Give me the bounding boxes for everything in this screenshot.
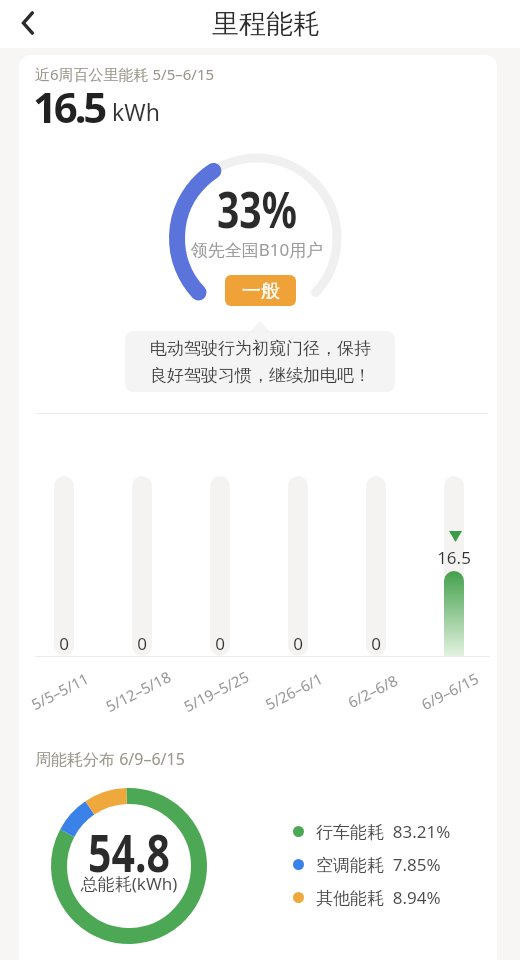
staticText: kWh — [112, 96, 160, 127]
staticText: 近6周百公里能耗 5/5–6/15 — [35, 64, 215, 84]
button[interactable]: 空调能耗 7.85% — [293, 853, 441, 876]
staticText: 5/5–5/11 — [28, 668, 92, 714]
staticText: 0 — [44, 632, 84, 655]
staticText: 其他能耗 8.94% — [316, 886, 441, 909]
staticText: 0 — [122, 632, 162, 655]
staticText: 33% — [172, 175, 342, 243]
staticText: 里程能耗 — [212, 7, 320, 41]
button[interactable]: 一般 — [225, 275, 296, 306]
staticText: 16.5 — [424, 546, 484, 569]
staticText: 总能耗(kWh) — [49, 872, 209, 895]
staticText: 一般 — [242, 279, 280, 303]
staticText: 5/12–5/18 — [102, 666, 175, 716]
button[interactable] — [10, 4, 48, 42]
staticText: 6/9–6/15 — [418, 668, 482, 714]
button[interactable]: 行车能耗 83.21% — [293, 820, 451, 843]
staticText: 6/2–6/8 — [344, 670, 401, 712]
button[interactable]: 其他能耗 8.94% — [293, 886, 441, 909]
staticText: 54.8 — [49, 817, 209, 887]
staticText: 空调能耗 7.85% — [316, 853, 441, 876]
staticText: 5/26–6/1 — [262, 668, 326, 714]
staticText: 0 — [356, 632, 396, 655]
staticText: 领先全国B10用户 — [157, 238, 357, 261]
staticText: 0 — [200, 632, 240, 655]
staticText: 5/19–5/25 — [180, 666, 253, 716]
staticText: 16.5 — [33, 78, 105, 135]
staticText: 周能耗分布 6/9–6/15 — [35, 748, 185, 770]
staticText: 0 — [278, 632, 318, 655]
staticText: 行车能耗 83.21% — [316, 820, 451, 843]
staticText: 电动驾驶行为初窥门径，保持 良好驾驶习惯，继续加电吧！ — [150, 338, 371, 386]
